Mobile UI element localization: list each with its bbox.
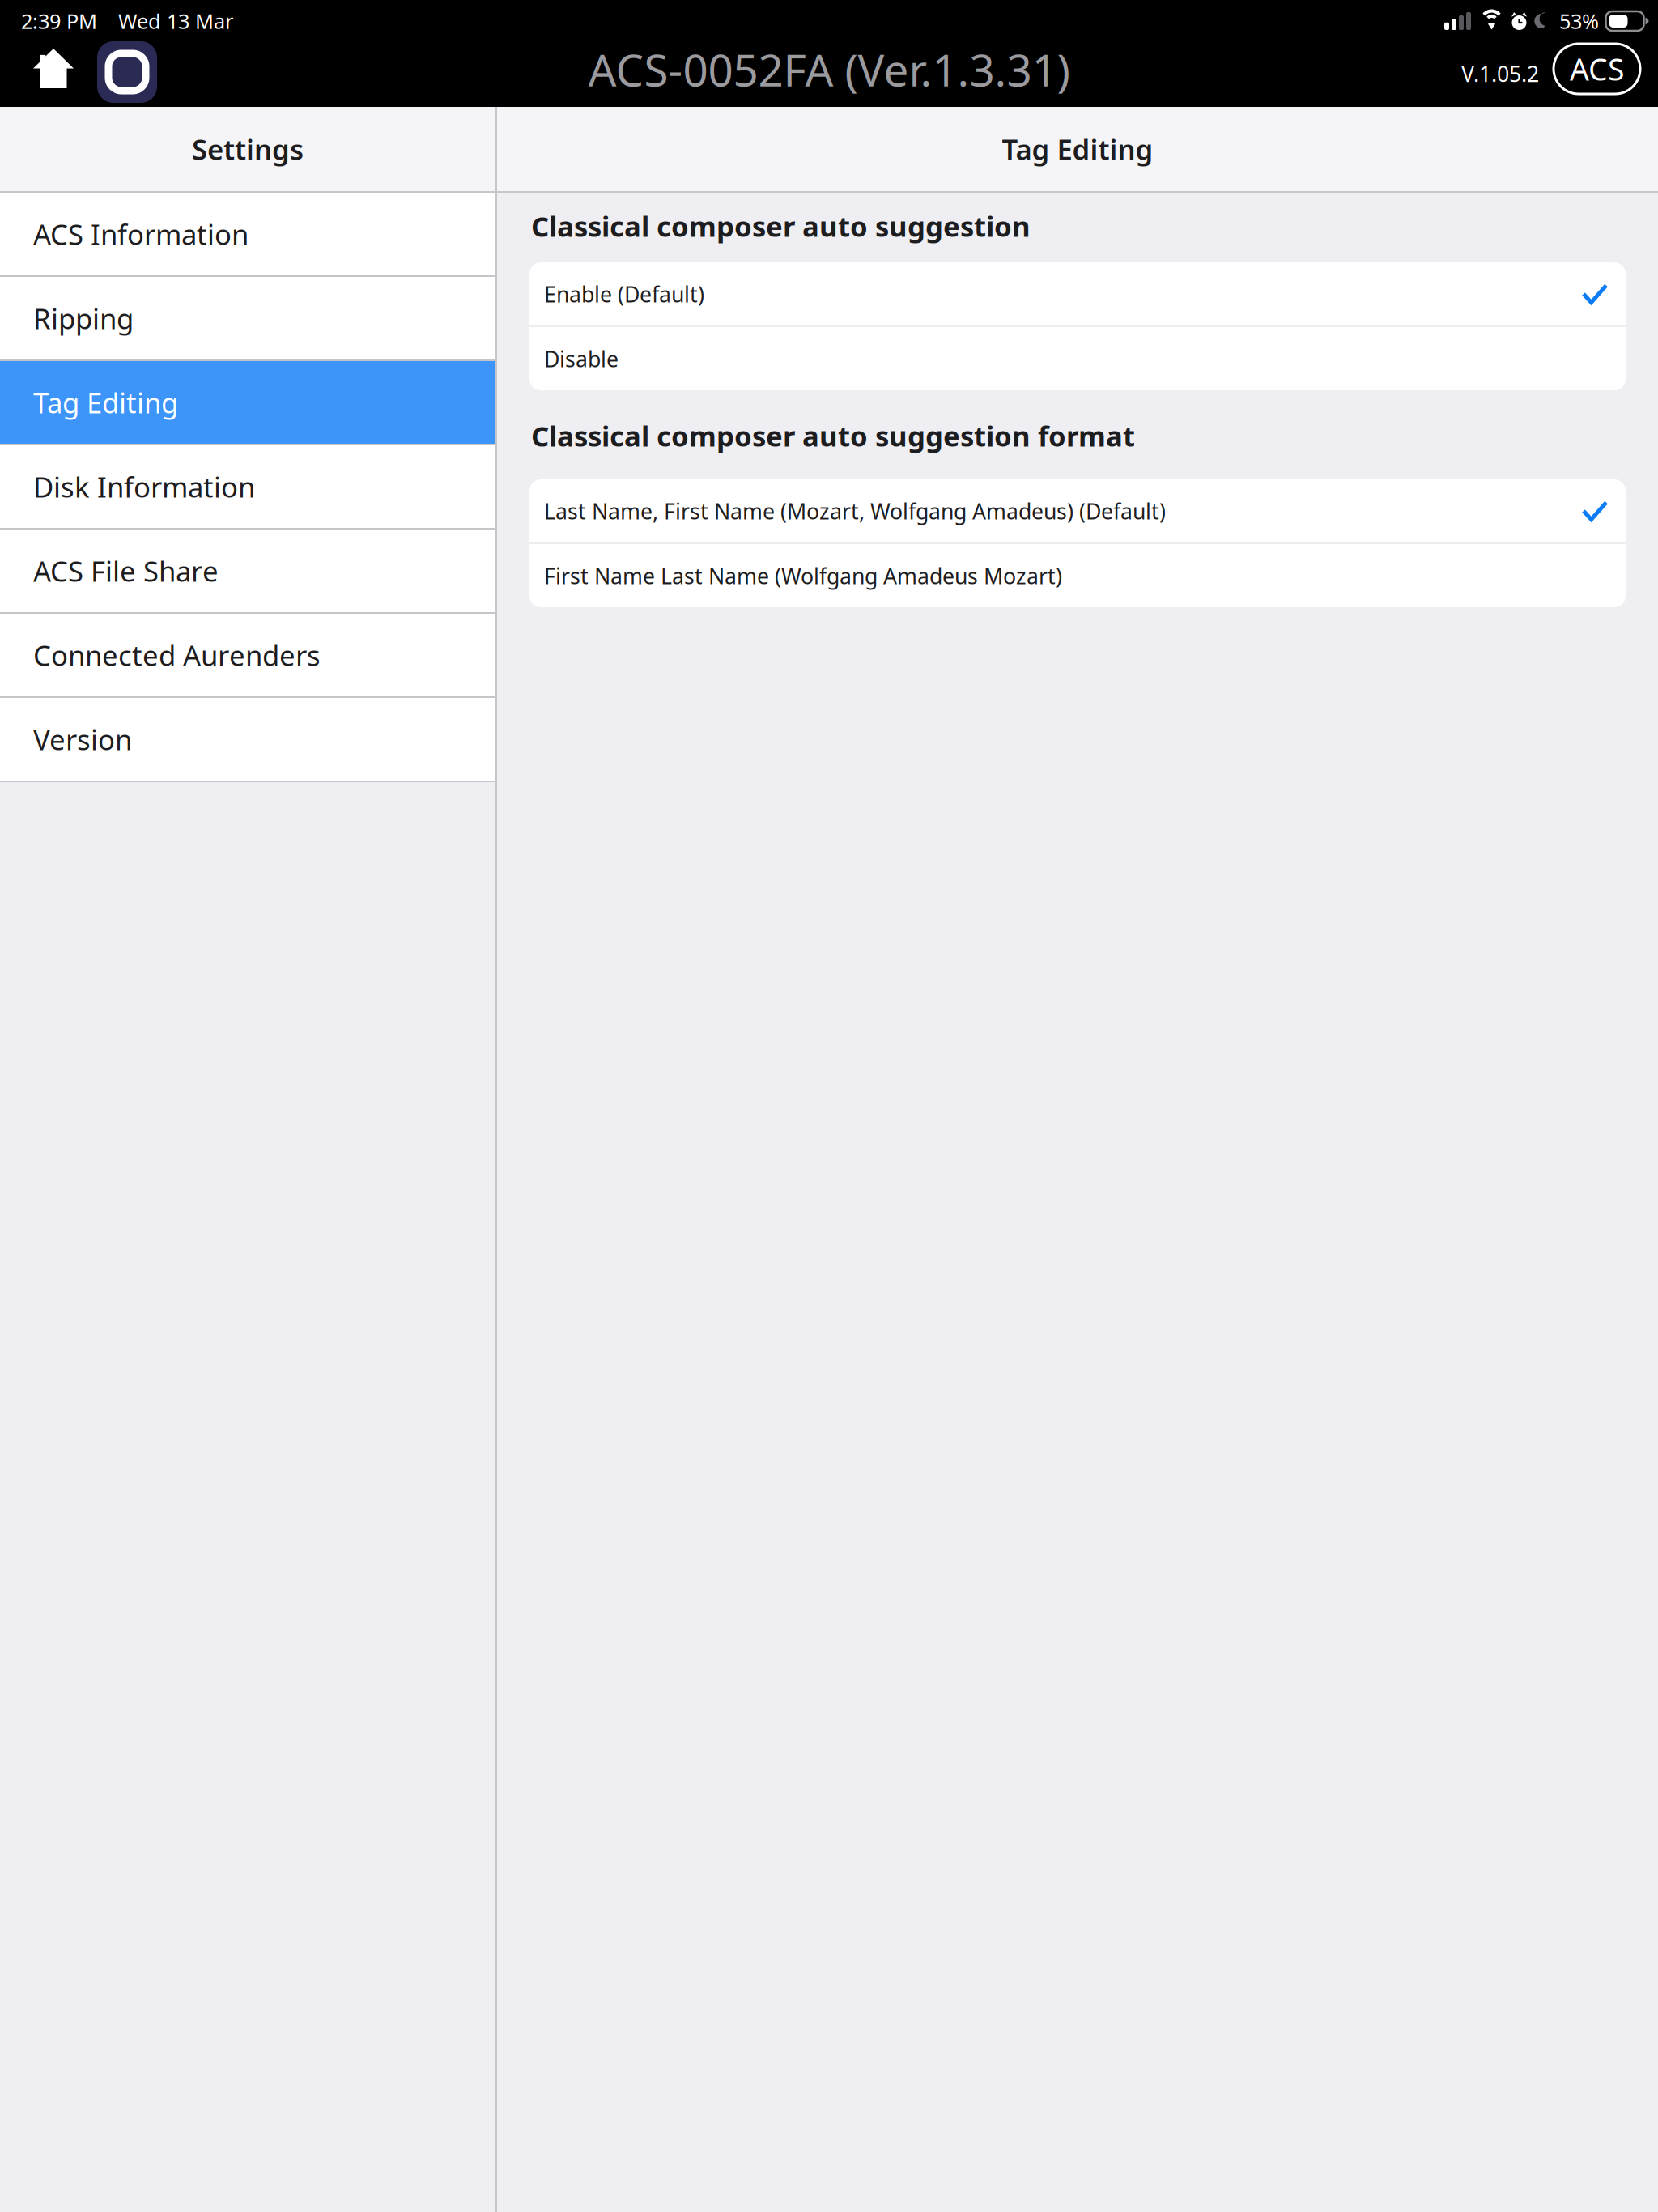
staticText: ACS Information — [33, 215, 249, 253]
button[interactable]: First Name Last Name (Wolfgang Amadeus M… — [529, 544, 1626, 607]
staticText: Classical composer auto suggestion — [531, 207, 1031, 245]
staticText: Version — [33, 721, 132, 758]
staticText: Wed 13 Mar — [118, 7, 233, 35]
staticText: Tag Editing — [1002, 130, 1153, 168]
staticText: Connected Aurenders — [33, 636, 321, 674]
staticText: Settings — [192, 130, 304, 168]
button[interactable]: Disk Information — [0, 445, 495, 528]
staticText: ACS File Share — [33, 552, 219, 589]
button[interactable]: ACS File Share — [0, 530, 495, 612]
button[interactable]: Home — [16, 42, 91, 107]
staticText: First Name Last Name (Wolfgang Amadeus M… — [544, 561, 1062, 590]
button[interactable]: ACS Information — [0, 193, 495, 275]
button[interactable]: Enable (Default) — [529, 262, 1626, 325]
staticText: Enable (Default) — [544, 280, 704, 308]
staticText: 53% — [1559, 7, 1599, 35]
staticText: Disable — [544, 344, 619, 373]
button[interactable]: ACS — [1554, 44, 1640, 105]
staticText: Disk Information — [33, 468, 255, 505]
staticText: ACS-0052FA (Ver.1.3.31) — [588, 40, 1070, 99]
staticText: Last Name, First Name (Mozart, Wolfgang … — [544, 497, 1166, 525]
staticText: Ripping — [33, 300, 134, 337]
button[interactable]: Ripping — [0, 277, 495, 359]
staticText: 2:39 PM — [21, 7, 97, 35]
staticText: Classical composer auto suggestion forma… — [531, 417, 1135, 454]
staticText: Tag Editing — [33, 384, 178, 421]
staticText: ACS — [1570, 49, 1624, 89]
staticText: V.1.05.2 — [1461, 59, 1539, 88]
button[interactable]: Disable — [529, 327, 1626, 390]
button[interactable]: Connected Aurenders — [0, 614, 495, 696]
button[interactable]: Version — [0, 698, 495, 781]
button[interactable]: Last Name, First Name (Mozart, Wolfgang … — [529, 479, 1626, 543]
button[interactable]: Tag Editing — [0, 361, 495, 444]
button[interactable]: Aurender app — [91, 42, 164, 107]
